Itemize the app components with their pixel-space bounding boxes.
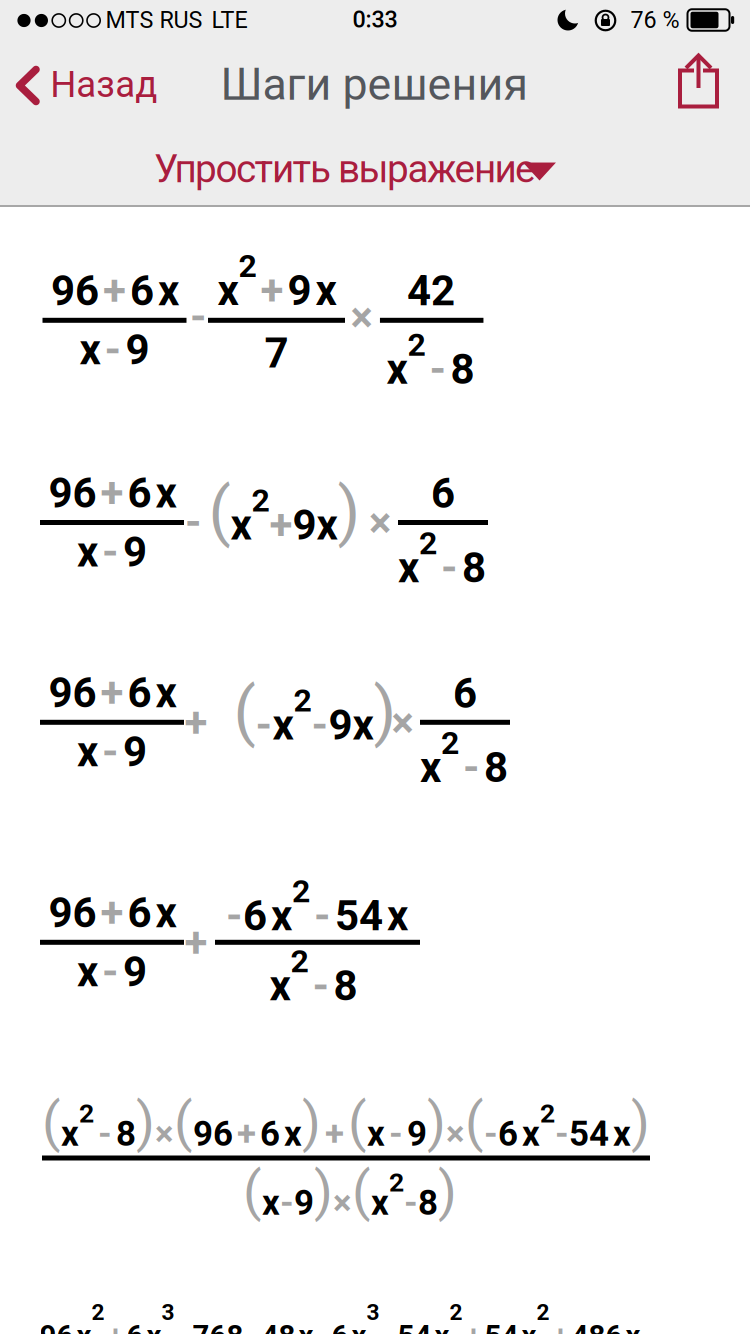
staticText: MTS RUS [105, 6, 202, 34]
staticText: 96 + 6 x [48, 669, 176, 717]
staticText: + [184, 699, 207, 747]
staticText: x2 + 9 x [217, 248, 336, 315]
staticText: - [185, 498, 202, 546]
staticText: 7 [264, 329, 288, 377]
staticText: x2 - 8 [420, 725, 508, 792]
staticText: 0:33 [352, 6, 397, 33]
staticText: 6 [453, 669, 477, 717]
staticText: 96 x2 + 6 x3 - 768 - 48 x - 6 x3 - 54 x2… [39, 1299, 640, 1334]
button[interactable]: Назад [0, 50, 190, 120]
staticText: x - 9 [77, 948, 147, 996]
button[interactable]: Share [663, 46, 733, 116]
staticText: x2 - 8 [398, 525, 486, 592]
staticText: 96 + 6 x [48, 889, 176, 937]
staticText: x - 9 [77, 528, 147, 576]
staticText: 96 + 6 x [51, 267, 179, 315]
staticText: x - 9 [79, 326, 149, 374]
staticText: x2 - 8 [387, 327, 475, 393]
staticText: (x2 - 8)×(96 + 6 x) + (x - 9)×(-6 x2-54 … [42, 1091, 650, 1154]
staticText: (x2+9x) [208, 474, 360, 549]
staticText: LTE [211, 6, 247, 34]
staticText: (-x2-9x) [233, 674, 396, 749]
button[interactable]: Упростить выражение [150, 133, 590, 203]
staticText: Шаги решения [220, 58, 528, 111]
staticText: 42 [407, 267, 455, 315]
staticText: x - 9 [77, 728, 147, 776]
staticText: -6 x2 - 54 x [226, 873, 408, 940]
staticText: Назад [50, 63, 157, 106]
staticText: + [184, 919, 207, 967]
staticText: × [369, 499, 391, 547]
staticText: 76 % [630, 6, 679, 34]
staticText: 6 [431, 469, 455, 517]
staticText: 96 + 6 x [48, 469, 176, 517]
staticText: x2 - 8 [269, 943, 357, 1010]
staticText: - [190, 293, 207, 341]
staticText: × [350, 293, 372, 341]
staticText: Упростить выражение [154, 146, 536, 192]
staticText: × [391, 699, 413, 747]
staticText: (x-9)×(x2-8) [243, 1160, 457, 1223]
